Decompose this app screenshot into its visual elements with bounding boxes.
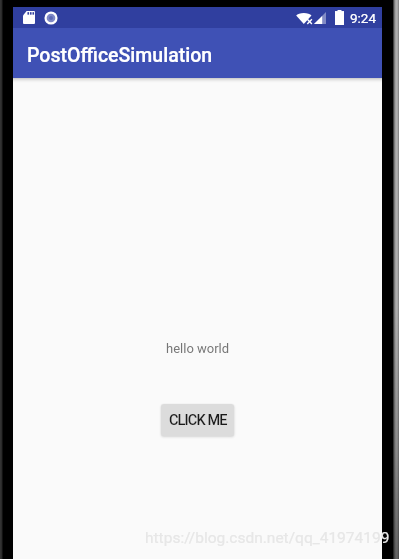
- other: Mobile signal: [314, 12, 326, 24]
- staticText: hello world: [166, 341, 230, 356]
- other: SD card: [23, 11, 35, 24]
- other: Wi-Fi disconnected: [296, 12, 313, 24]
- other: Battery full: [335, 10, 344, 25]
- staticText: PostOfficeSimulation: [27, 44, 213, 67]
- other: Screen recording: [44, 11, 58, 25]
- staticText: 9:24: [350, 10, 377, 26]
- staticText: https://blog.csdn.net/qq_41974199: [145, 529, 390, 547]
- button[interactable]: CLICK ME: [161, 404, 234, 436]
- staticText: CLICK ME: [169, 412, 227, 429]
